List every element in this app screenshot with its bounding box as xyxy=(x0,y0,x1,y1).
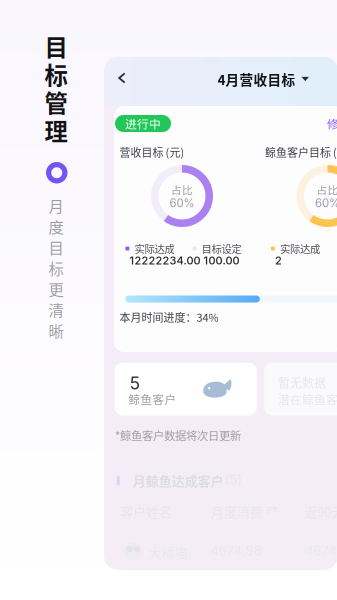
staticText: 晰 xyxy=(48,319,63,341)
staticText: 60% xyxy=(169,196,194,210)
staticText: 5 xyxy=(129,373,140,394)
staticText: 管 xyxy=(44,85,67,119)
staticText: 实际达成 xyxy=(280,241,320,256)
staticText: 近90天 xyxy=(304,502,337,521)
staticText: 暂无数据 xyxy=(278,374,326,391)
staticText: *鲸鱼客户数据将次日更新 xyxy=(115,427,241,443)
staticText: 月鲸鱼达成客户 xyxy=(133,471,224,490)
staticText: 目 xyxy=(48,236,63,258)
staticText: 修改 xyxy=(327,115,337,132)
staticText: 本月时间进度：34% xyxy=(119,309,218,325)
staticText: 月 xyxy=(48,194,63,216)
button[interactable]: 返回 xyxy=(107,63,137,93)
staticText: 更 xyxy=(48,277,63,300)
staticText: 理 xyxy=(44,113,67,147)
staticText: 鲸鱼客户目标 (人 xyxy=(265,144,337,160)
staticText: (5) xyxy=(224,472,242,488)
staticText: 客户姓名 xyxy=(120,502,172,521)
staticText: 占比 xyxy=(316,182,337,197)
staticText: 大橘猫 xyxy=(149,543,188,562)
button[interactable]: 4月营收目标 xyxy=(217,66,309,92)
staticText: 度 xyxy=(48,215,63,237)
staticText: 4674.98 xyxy=(211,543,262,559)
staticText: 100.00 xyxy=(203,254,239,267)
staticText: 潜在鲸鱼客户 xyxy=(278,391,337,407)
staticText: 目标设定 xyxy=(201,241,241,256)
staticText: 60% xyxy=(315,196,337,210)
staticText: 目 xyxy=(44,29,67,63)
staticText: 2 xyxy=(275,254,282,267)
staticText: 标 xyxy=(44,57,67,91)
staticText: 占比 xyxy=(171,182,193,197)
staticText: 实际达成 xyxy=(134,241,174,256)
staticText: 月度消费 xyxy=(211,502,263,521)
staticText: 12222234.00 xyxy=(129,254,200,267)
staticText: 进行中 xyxy=(125,115,161,132)
staticText: 4月营收目标 xyxy=(217,69,295,89)
staticText: 营收目标 (元) xyxy=(119,144,184,160)
staticText: 4674.9 xyxy=(306,543,337,559)
button[interactable]: 修改 xyxy=(327,115,337,132)
staticText: 鲸鱼客户 xyxy=(128,391,176,407)
staticText: 标 xyxy=(48,257,63,279)
staticText: 清 xyxy=(48,298,63,320)
